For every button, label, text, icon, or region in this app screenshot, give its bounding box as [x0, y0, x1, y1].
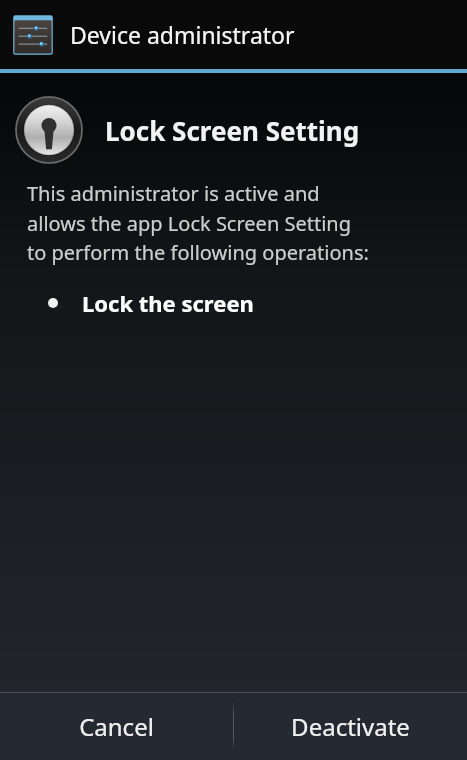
staticText: Lock the screen: [82, 288, 254, 318]
other: Device administrator: [10, 12, 56, 58]
staticText: Lock Screen Setting: [105, 113, 360, 148]
staticText: Cancel: [79, 710, 154, 743]
staticText: Deactivate: [291, 710, 410, 743]
button[interactable]: Cancel: [0, 692, 233, 760]
button[interactable]: Deactivate: [233, 692, 467, 760]
staticText: Device administrator: [70, 19, 295, 50]
staticText: This administrator is active and allows …: [27, 180, 369, 266]
